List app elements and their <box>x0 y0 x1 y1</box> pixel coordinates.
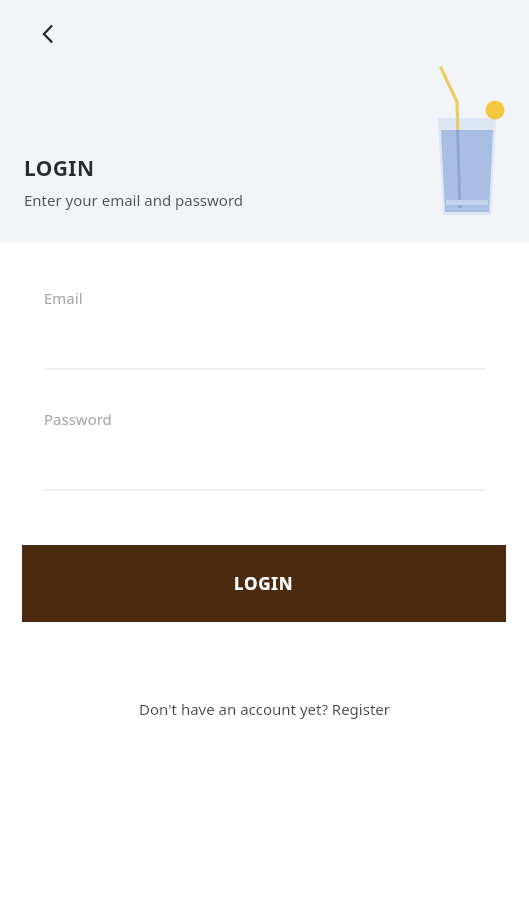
button[interactable]: Password <box>0 388 529 491</box>
staticText: Password <box>44 409 112 429</box>
staticText: Email <box>44 288 83 308</box>
button[interactable]: Email <box>0 267 529 370</box>
button[interactable]: Don't have an account yet? Register <box>0 690 529 728</box>
staticText: LOGIN <box>24 154 95 183</box>
button[interactable]: LOGIN <box>22 545 506 622</box>
button[interactable]: Back <box>26 12 70 56</box>
staticText: Don't have an account yet? Register <box>139 699 390 719</box>
staticText: Enter your email and password <box>24 190 244 210</box>
staticText: LOGIN <box>234 572 294 595</box>
